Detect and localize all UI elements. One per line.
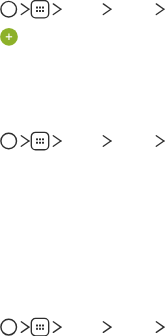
button[interactable]: Next xyxy=(156,321,165,333)
button[interactable]: Account xyxy=(0,133,17,150)
button[interactable]: Next xyxy=(156,135,165,147)
button[interactable]: Apps xyxy=(31,1,48,18)
button[interactable]: Account xyxy=(0,1,17,18)
button[interactable]: Next xyxy=(53,135,62,147)
button[interactable]: Next xyxy=(53,321,62,333)
button[interactable]: Next xyxy=(103,135,112,147)
button[interactable]: Next xyxy=(21,135,30,147)
button[interactable]: Next xyxy=(53,3,62,15)
button[interactable]: Next xyxy=(103,321,112,333)
button[interactable]: Next xyxy=(156,3,165,15)
button[interactable]: Next xyxy=(103,3,112,15)
button[interactable]: Apps xyxy=(31,319,48,336)
button[interactable]: Account xyxy=(0,319,17,336)
button[interactable]: Apps xyxy=(31,133,48,150)
button[interactable]: Next xyxy=(21,3,30,15)
button[interactable]: Next xyxy=(21,321,30,333)
button[interactable]: Add xyxy=(0,28,18,46)
